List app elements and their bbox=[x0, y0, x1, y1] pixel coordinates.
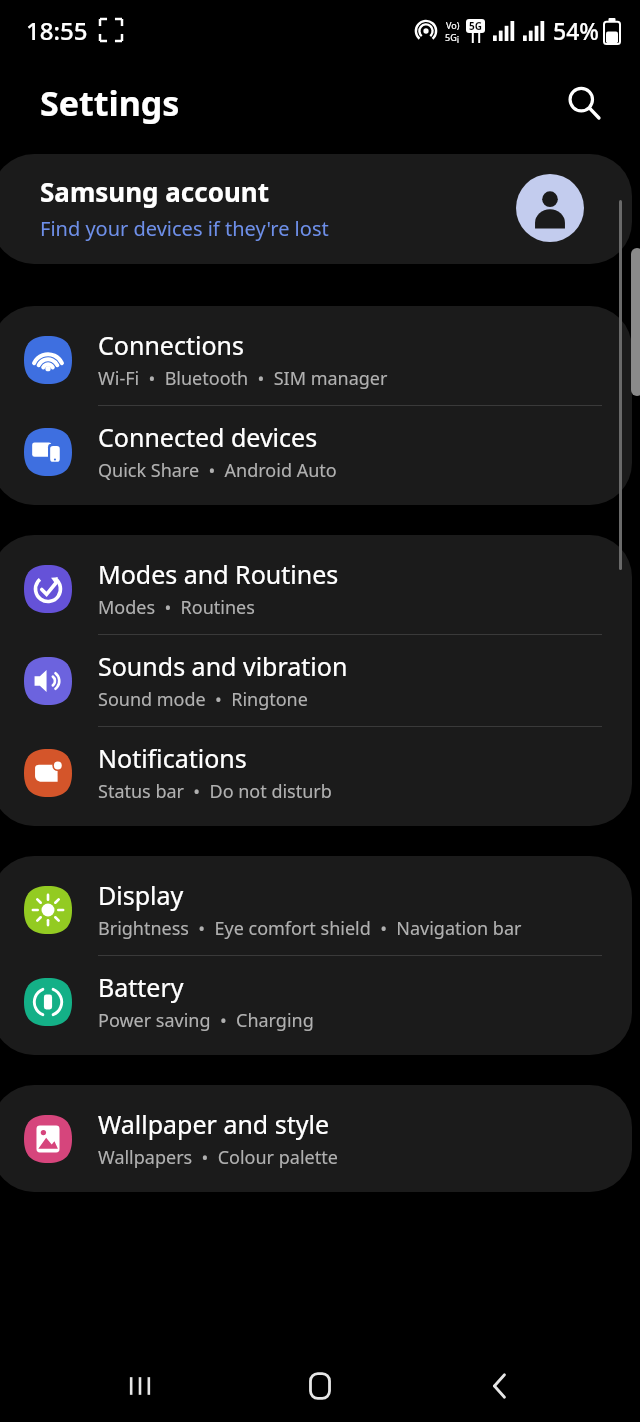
staticText: Modes and Routines bbox=[98, 557, 339, 591]
button[interactable]: Sounds and vibration bbox=[0, 635, 632, 726]
staticText: Find your devices if they're lost bbox=[40, 215, 329, 242]
button[interactable]: Connected devices bbox=[0, 406, 632, 497]
staticText: Notifications bbox=[98, 741, 247, 775]
button[interactable]: Battery bbox=[0, 956, 632, 1047]
button[interactable]: Recents bbox=[104, 1350, 176, 1422]
staticText: Wi-Fi • Bluetooth • SIM manager bbox=[98, 366, 388, 391]
button[interactable]: Display bbox=[0, 864, 632, 955]
staticText: Wallpaper and style bbox=[98, 1107, 330, 1141]
button[interactable]: Notifications bbox=[0, 727, 632, 818]
button[interactable]: Modes and Routines bbox=[0, 543, 632, 634]
button[interactable]: Home bbox=[284, 1350, 356, 1422]
button[interactable]: Samsung account bbox=[0, 154, 632, 264]
staticText: Connected devices bbox=[98, 420, 318, 454]
staticText: Sounds and vibration bbox=[98, 649, 348, 683]
staticText: Modes • Routines bbox=[98, 595, 255, 620]
button[interactable]: Back bbox=[464, 1350, 536, 1422]
staticText: Connections bbox=[98, 328, 244, 362]
staticText: Battery bbox=[98, 970, 184, 1004]
staticText: Vo) bbox=[446, 19, 460, 31]
staticText: Settings bbox=[40, 80, 180, 126]
staticText: Status bar • Do not disturb bbox=[98, 779, 332, 804]
staticText: Sound mode • Ringtone bbox=[98, 687, 308, 712]
staticText: 5G¡ bbox=[445, 31, 460, 43]
button[interactable]: Search bbox=[558, 77, 610, 129]
staticText: Quick Share • Android Auto bbox=[98, 458, 337, 483]
staticText: Display bbox=[98, 878, 184, 912]
staticText: 5G bbox=[469, 19, 482, 33]
staticText: Samsung account bbox=[40, 174, 270, 209]
staticText: Wallpapers • Colour palette bbox=[98, 1145, 338, 1170]
staticText: Brightness • Eye comfort shield • Naviga… bbox=[98, 916, 522, 941]
staticText: 18:55 bbox=[26, 14, 88, 47]
button[interactable]: Wallpaper and style bbox=[0, 1093, 632, 1184]
staticText: 54% bbox=[553, 15, 599, 46]
staticText: Power saving • Charging bbox=[98, 1008, 314, 1033]
button[interactable]: Connections bbox=[0, 314, 632, 405]
